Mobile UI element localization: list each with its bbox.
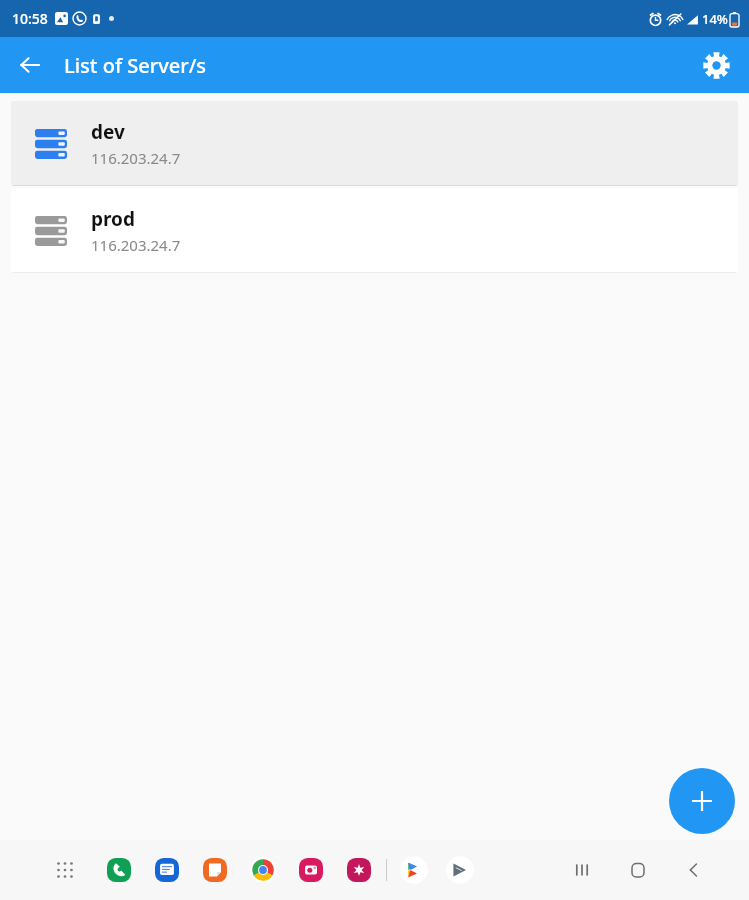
staticText: 10:58 — [12, 9, 48, 28]
button[interactable]: Camera — [294, 853, 328, 887]
staticText: List of Server/s — [64, 52, 207, 79]
staticText: 14% — [702, 10, 728, 28]
button[interactable]: Home — [619, 851, 657, 889]
button[interactable]: Messages — [150, 853, 184, 887]
staticText: dev — [91, 119, 125, 145]
button[interactable]: prod — [11, 188, 738, 273]
button[interactable]: Phone — [102, 853, 136, 887]
staticText: 116.203.24.7 — [91, 235, 181, 255]
button[interactable]: Play Movies — [443, 853, 477, 887]
button[interactable]: Add server — [669, 768, 735, 834]
staticText: prod — [91, 206, 136, 232]
button[interactable]: Chrome — [246, 853, 280, 887]
button[interactable]: Recents — [563, 851, 601, 889]
button[interactable]: Notes — [198, 853, 232, 887]
button[interactable]: Back — [675, 851, 713, 889]
button[interactable]: Play Store — [397, 853, 431, 887]
button[interactable]: Settings — [693, 42, 739, 88]
button[interactable]: Back — [8, 43, 52, 87]
button[interactable]: Apps — [48, 853, 82, 887]
button[interactable]: Gallery app — [342, 853, 376, 887]
staticText: 116.203.24.7 — [91, 148, 181, 168]
button[interactable]: dev — [11, 101, 738, 186]
